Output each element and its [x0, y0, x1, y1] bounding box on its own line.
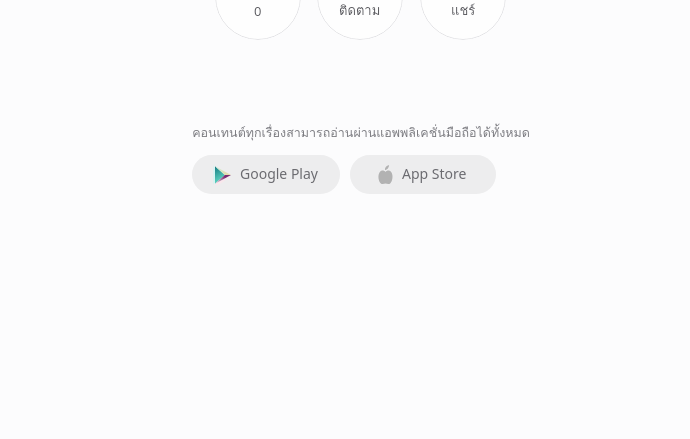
other: App Store [378, 165, 393, 184]
button[interactable]: Google Play [192, 155, 340, 194]
other: Google Play [213, 165, 231, 185]
staticText: ติดตาม [339, 0, 381, 21]
button[interactable]: App Store [350, 155, 496, 194]
staticText: คอนเทนต์ทุกเรื่องสามารถอ่านผ่านแอพพลิเคช… [16, 123, 690, 143]
staticText: Google Play [240, 164, 318, 183]
button[interactable]: ติดตาม [317, 0, 403, 40]
staticText: แชร์ [451, 0, 476, 21]
staticText: App Store [402, 164, 467, 183]
staticText: 0 [254, 2, 262, 20]
button[interactable]: 0 [215, 0, 301, 40]
button[interactable]: แชร์ [420, 0, 506, 40]
